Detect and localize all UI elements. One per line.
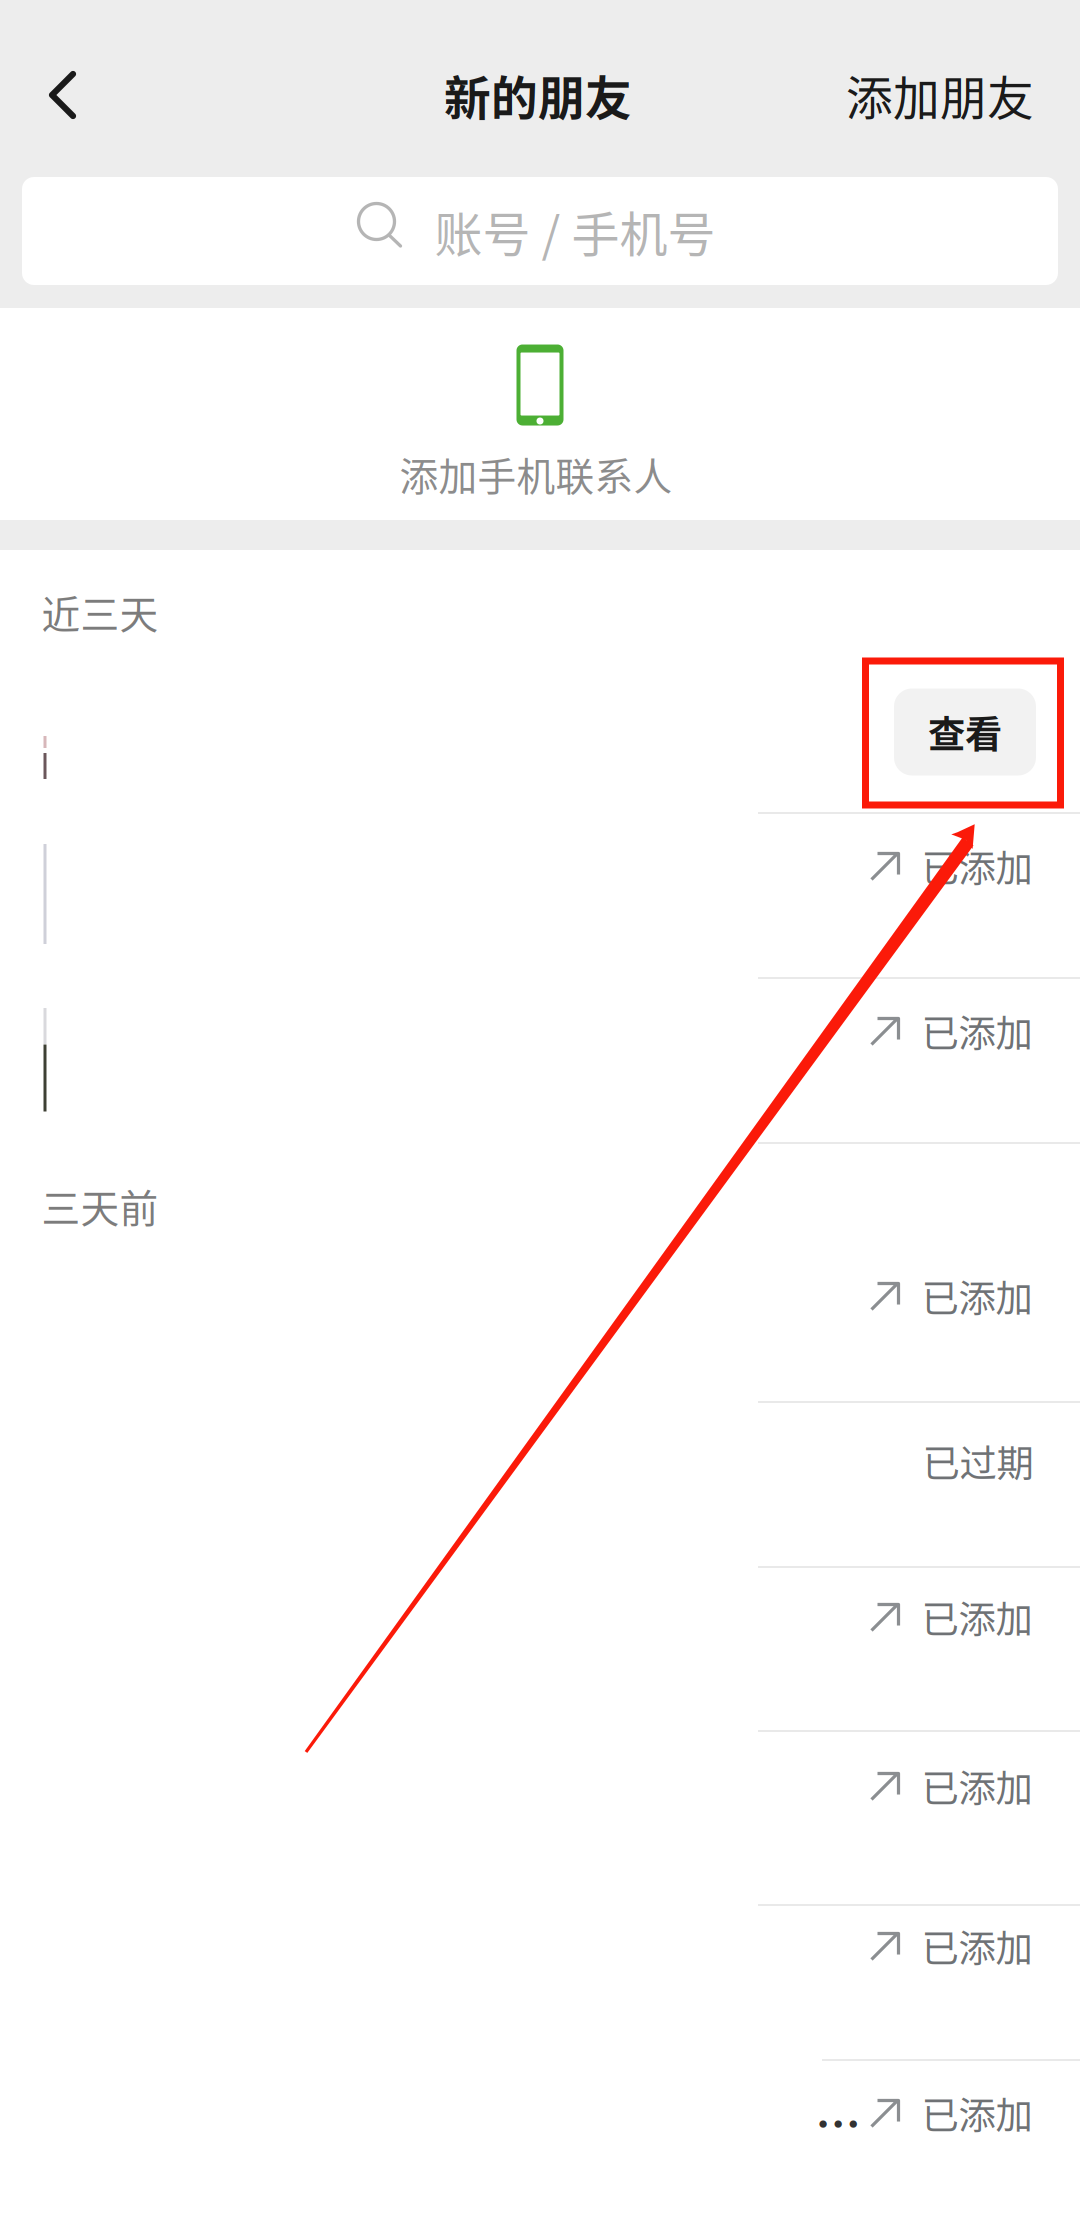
staticText: 已添加 <box>921 1759 1032 1813</box>
staticText: 已添加 <box>921 1269 1032 1323</box>
button[interactable]: 已添加 <box>0 814 1080 979</box>
staticText: 已添加 <box>921 1004 1032 1058</box>
staticText: 已添加 <box>921 1590 1032 1644</box>
staticText: 查看 <box>928 705 1002 759</box>
staticText: 账号 / 手机号 <box>434 196 715 266</box>
staticText: 近三天 <box>41 584 158 640</box>
button[interactable]: 已添加 <box>0 1274 1080 1403</box>
staticText: 添加手机联系人 <box>399 446 672 502</box>
button[interactable]: 已添加 <box>0 1906 1080 2061</box>
button[interactable]: 已添加 <box>0 2061 1080 2228</box>
button[interactable]: 添加朋友 <box>822 31 1058 159</box>
staticText: 已添加 <box>921 2086 1032 2140</box>
staticText: 新的朋友 <box>444 61 632 129</box>
button[interactable]: 查看 <box>0 646 1080 814</box>
button[interactable]: 添加手机联系人 <box>0 308 1080 520</box>
staticText: 已过期 <box>922 1434 1033 1488</box>
staticText: 已添加 <box>921 1919 1032 1973</box>
staticText: 已添加 <box>921 839 1032 893</box>
button[interactable]: 账号 / 手机号 <box>22 177 1058 285</box>
staticText: 添加朋友 <box>846 61 1034 129</box>
button[interactable]: 已添加 <box>0 1568 1080 1732</box>
button[interactable]: 已添加 <box>0 979 1080 1144</box>
button[interactable]: 已过期 <box>0 1403 1080 1568</box>
staticText: 三天前 <box>41 1178 158 1234</box>
button[interactable]: Back <box>3 30 123 160</box>
staticText: … <box>815 2089 860 2155</box>
button[interactable]: 已添加 <box>0 1732 1080 1906</box>
